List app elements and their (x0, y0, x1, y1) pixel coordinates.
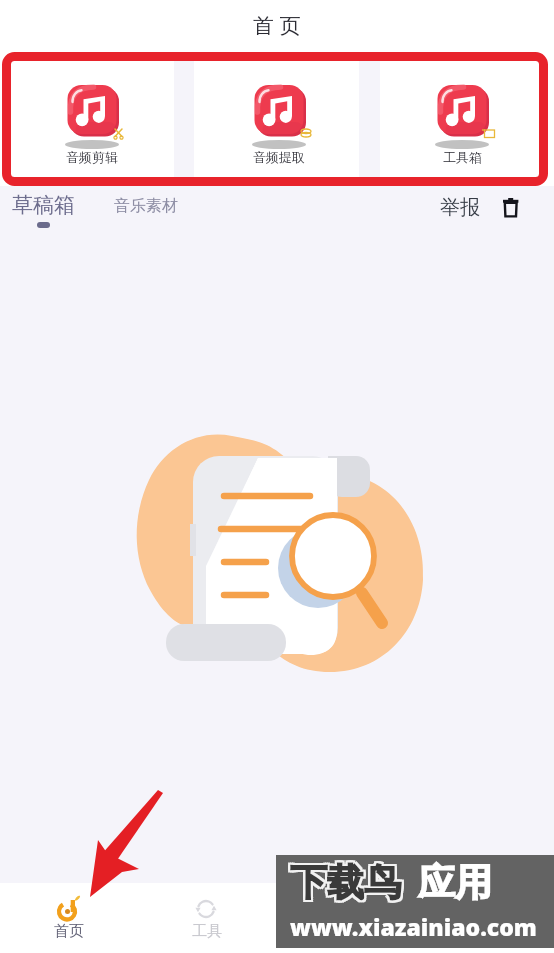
staticText: 音乐素材 (114, 196, 178, 216)
button[interactable]: 工具箱 (380, 52, 554, 186)
staticText: 下载鸟 (288, 859, 399, 906)
staticText: 下载鸟 (290, 859, 401, 906)
button[interactable]: 音频提取 (194, 52, 359, 186)
staticText: 下载鸟 (290, 857, 401, 904)
staticText: 工具 (192, 922, 222, 941)
button[interactable]: 草稿箱 (12, 192, 75, 228)
staticText: 下载鸟 (290, 859, 401, 906)
staticText: 举报 (440, 195, 480, 220)
staticText: 下载鸟 (292, 859, 403, 906)
staticText: 下载鸟 (288, 857, 399, 904)
staticText: 下载鸟 (288, 861, 399, 908)
staticText: 下载鸟 (292, 861, 403, 908)
staticText: 下载鸟 (290, 861, 401, 908)
staticText: 工具箱 (443, 149, 482, 165)
staticText: 首页 (54, 922, 84, 941)
staticText: www.xiazainiao.com (290, 911, 537, 942)
button[interactable]: 工具 (138, 883, 276, 953)
button[interactable]: Delete (494, 191, 527, 224)
staticText: 草稿箱 (12, 192, 75, 218)
staticText: 音频提取 (253, 149, 305, 165)
staticText: 音频剪辑 (66, 149, 118, 165)
button[interactable]: 首页 (0, 883, 138, 953)
button[interactable]: 音频剪辑 (0, 52, 174, 186)
staticText: 首 页 (253, 11, 301, 40)
button[interactable]: 举报 (440, 195, 480, 220)
staticText: 下载鸟 (292, 857, 403, 904)
staticText: 应用 (418, 859, 492, 906)
button[interactable]: 音乐素材 (114, 196, 178, 216)
